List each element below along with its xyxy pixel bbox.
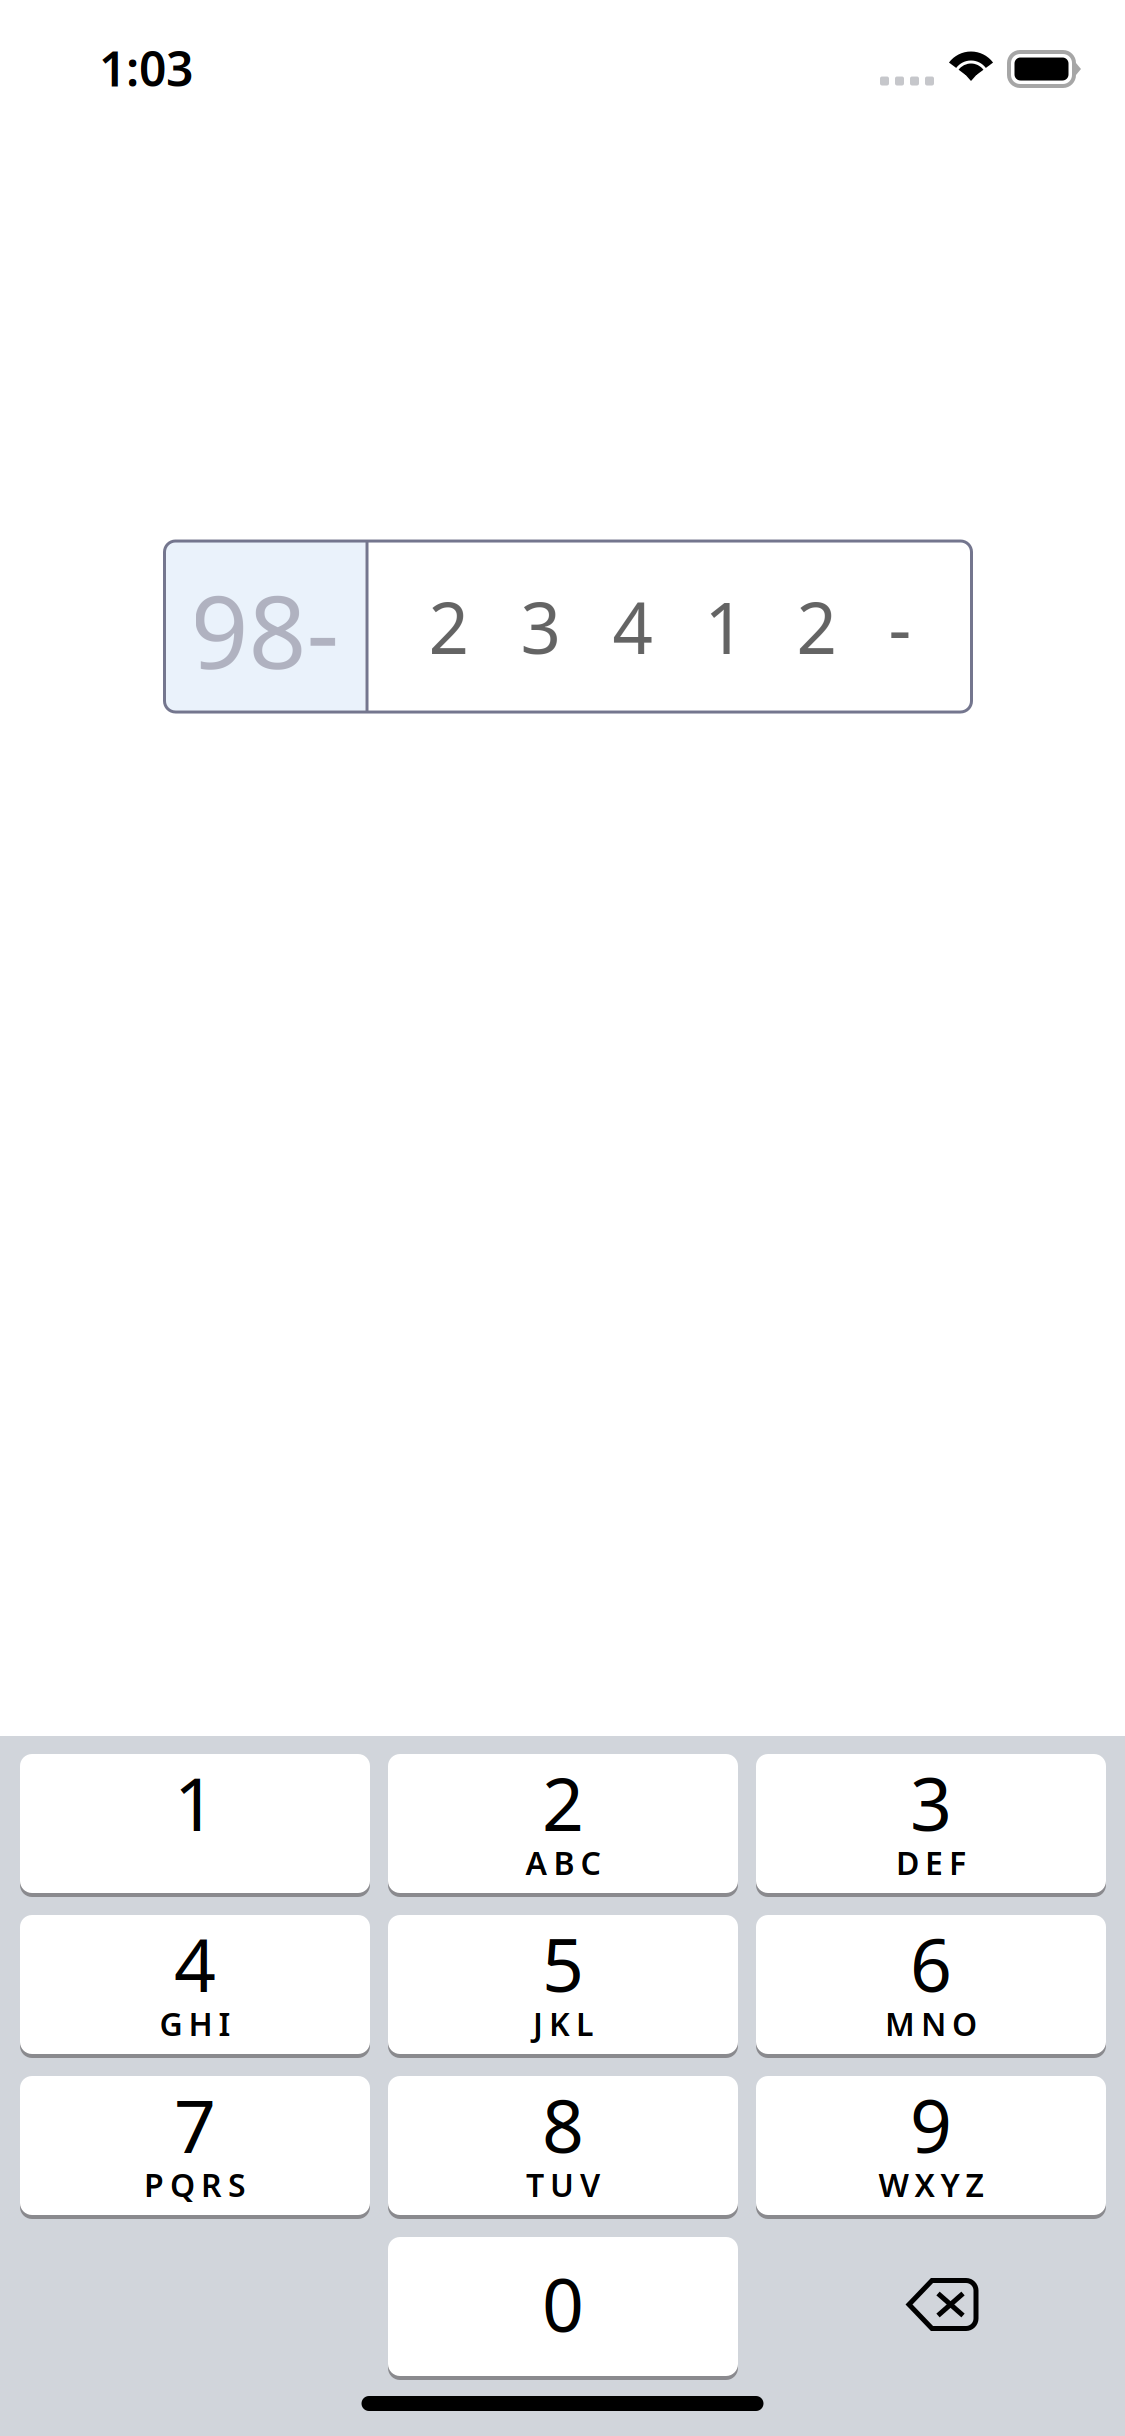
button[interactable]: 6 — [756, 1915, 1106, 2054]
staticText: WXYZ — [878, 2163, 983, 2206]
button[interactable]: 4 — [20, 1915, 370, 2054]
staticText: 3 — [910, 1754, 952, 1851]
staticText: ABC — [525, 1841, 600, 1884]
button[interactable]: 0 — [388, 2237, 738, 2376]
staticText: 0 — [542, 2255, 584, 2352]
staticText: GHI — [159, 2002, 230, 2045]
staticText: 98- — [190, 562, 339, 697]
staticText: 8 — [542, 2076, 584, 2173]
button[interactable]: 3 — [756, 1754, 1106, 1893]
button[interactable]: 5 — [388, 1915, 738, 2054]
staticText: 2 3 4 1 2 - — [428, 580, 911, 673]
staticText: 4 — [174, 1915, 216, 2012]
button[interactable]: 1 — [20, 1754, 370, 1893]
button[interactable]: 7 — [20, 2076, 370, 2215]
staticText: PQRS — [144, 2163, 246, 2206]
staticText: 1 — [174, 1754, 216, 1851]
staticText: 9 — [910, 2076, 952, 2173]
staticText: 5 — [542, 1915, 584, 2012]
staticText: 6 — [910, 1915, 952, 2012]
staticText: 1:03 — [99, 36, 193, 100]
button[interactable]: Delete — [756, 2237, 1106, 2376]
button[interactable]: Phone number — [153, 541, 971, 712]
staticText: JKL — [533, 2002, 593, 2045]
staticText: 7 — [174, 2076, 216, 2173]
button[interactable]: 2 — [388, 1754, 738, 1893]
staticText: 2 — [542, 1754, 584, 1851]
staticText: DEF — [896, 1841, 966, 1884]
staticText: TUV — [526, 2163, 600, 2206]
button[interactable]: 8 — [388, 2076, 738, 2215]
staticText: MNO — [885, 2002, 977, 2045]
button[interactable]: 9 — [756, 2076, 1106, 2215]
